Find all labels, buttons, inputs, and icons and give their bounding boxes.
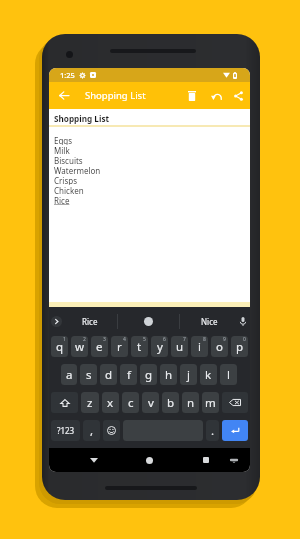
staticText: a — [66, 367, 73, 383]
button[interactable]: z — [81, 392, 99, 413]
staticText: Crisps — [54, 175, 78, 185]
button[interactable]: v — [142, 392, 159, 413]
button[interactable]: Rice — [63, 307, 117, 336]
button[interactable]: Backspace — [222, 392, 248, 413]
button[interactable]: y — [151, 336, 168, 357]
staticText: o — [216, 339, 223, 355]
staticText: i — [198, 339, 201, 355]
staticText: j — [187, 367, 190, 383]
staticText: q — [56, 339, 64, 355]
button[interactable]: b — [162, 392, 179, 413]
staticText: Biscuits — [54, 155, 83, 165]
staticText: g — [145, 367, 153, 383]
staticText: 1 — [63, 336, 66, 343]
staticText: Rice — [82, 316, 98, 327]
staticText: p — [236, 339, 244, 355]
button[interactable]: w — [71, 336, 88, 357]
staticText: x — [107, 395, 114, 411]
button[interactable]: l — [220, 364, 237, 385]
button[interactable]: r — [111, 336, 128, 357]
staticText: f — [127, 367, 131, 383]
button[interactable]: g — [140, 364, 157, 385]
staticText: . — [211, 423, 215, 439]
staticText: Eggs — [54, 135, 73, 145]
staticText: l — [227, 367, 230, 383]
staticText: w — [75, 339, 85, 355]
button[interactable]: Delete — [180, 82, 204, 109]
staticText: 9 — [223, 336, 226, 343]
staticText: m — [205, 395, 216, 411]
button[interactable]: p — [231, 336, 248, 357]
button[interactable]: e — [91, 336, 108, 357]
staticText: 8 — [203, 336, 206, 343]
staticText: b — [167, 395, 175, 411]
button[interactable]: i — [191, 336, 208, 357]
button[interactable]: Nice — [180, 307, 238, 336]
button[interactable]: , — [83, 420, 100, 441]
staticText: u — [176, 339, 184, 355]
button[interactable]: Undo — [204, 82, 228, 109]
button[interactable]: m — [202, 392, 219, 413]
staticText: y — [157, 339, 163, 355]
button[interactable]: c — [122, 392, 139, 413]
staticText: c — [128, 395, 134, 411]
button[interactable]: Recent apps — [197, 448, 215, 472]
button[interactable]: Switch keyboard — [225, 448, 243, 472]
staticText: , — [90, 423, 94, 439]
button[interactable]: u — [171, 336, 188, 357]
staticText: 0 — [243, 336, 246, 343]
staticText: v — [148, 395, 154, 411]
staticText: n — [187, 395, 195, 411]
button[interactable]: q — [51, 336, 68, 357]
staticText: k — [205, 367, 212, 383]
staticText: Nice — [201, 316, 218, 327]
staticText: s — [86, 367, 92, 383]
staticText: 7 — [183, 336, 186, 343]
button[interactable]: Voice input — [235, 307, 250, 336]
staticText: d — [105, 367, 113, 383]
staticText: 2 — [83, 336, 86, 343]
staticText: h — [165, 367, 173, 383]
button[interactable]: ?123 — [51, 420, 80, 441]
button[interactable]: More suggestions — [50, 307, 62, 336]
staticText: Rice — [54, 195, 70, 205]
button[interactable]: k — [200, 364, 217, 385]
button[interactable]: Share — [228, 82, 249, 109]
staticText: 4 — [123, 336, 126, 343]
button[interactable]: d — [100, 364, 117, 385]
staticText: Shopping List — [85, 89, 146, 102]
button[interactable]: Shift — [51, 392, 78, 413]
button[interactable]: Navigate up — [52, 82, 75, 109]
staticText: e — [96, 339, 103, 355]
button[interactable]: Suggestion — [118, 307, 179, 336]
button[interactable]: Emoji — [103, 420, 120, 441]
staticText: Chicken — [54, 185, 84, 195]
staticText: 1:25 — [60, 70, 75, 80]
staticText: 5 — [143, 336, 146, 343]
staticText: 6 — [163, 336, 166, 343]
staticText: Milk — [54, 145, 70, 155]
button[interactable]: f — [120, 364, 137, 385]
button[interactable]: Home — [140, 448, 158, 472]
button[interactable]: . — [206, 420, 219, 441]
staticText: Watermelon — [54, 165, 101, 175]
button[interactable]: a — [61, 364, 77, 385]
button[interactable]: j — [180, 364, 197, 385]
staticText: Shopping List — [54, 113, 110, 124]
button[interactable]: h — [160, 364, 177, 385]
button[interactable]: Back — [85, 448, 103, 472]
button[interactable]: t — [131, 336, 148, 357]
button[interactable]: n — [182, 392, 199, 413]
button[interactable]: Enter — [222, 420, 248, 441]
staticText: r — [117, 339, 122, 355]
button[interactable]: x — [102, 392, 119, 413]
staticText: 3 — [103, 336, 106, 343]
button[interactable]: o — [211, 336, 228, 357]
button[interactable]: s — [80, 364, 97, 385]
staticText: z — [87, 395, 93, 411]
staticText: ?123 — [57, 425, 75, 436]
staticText: t — [137, 339, 142, 355]
